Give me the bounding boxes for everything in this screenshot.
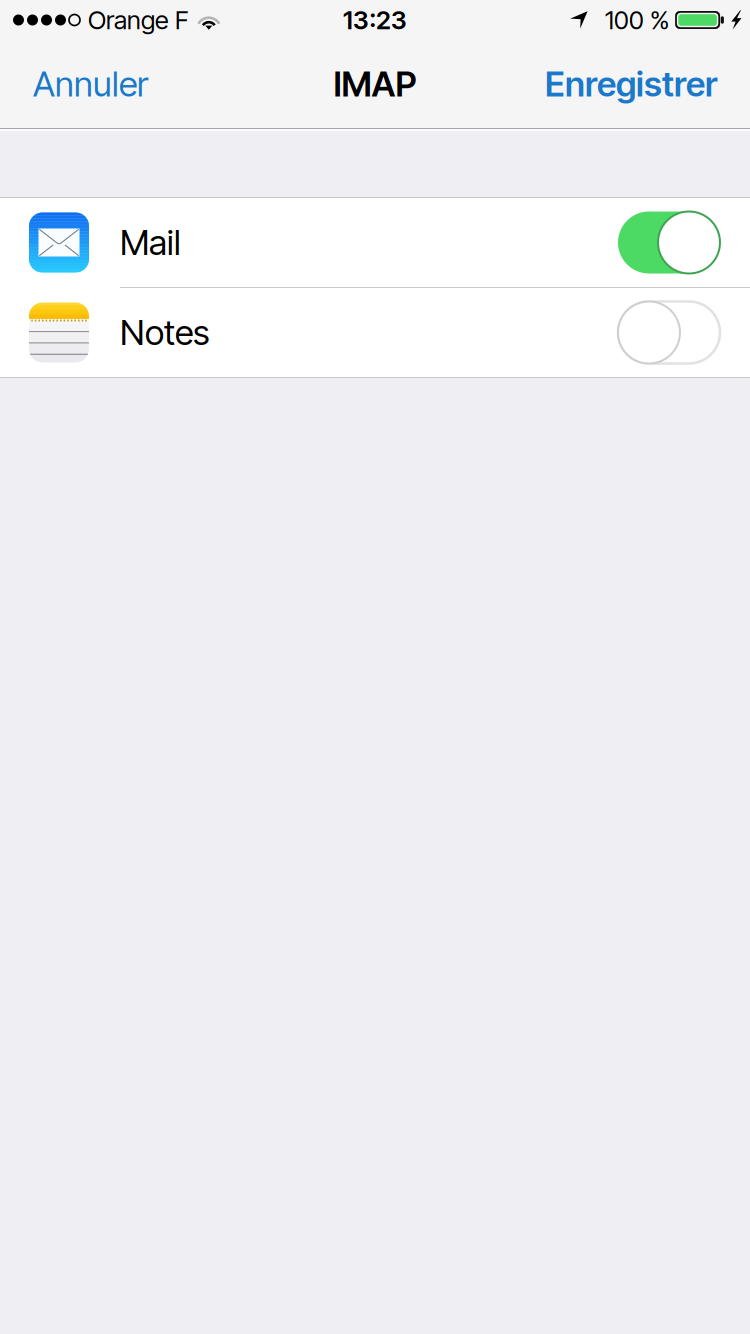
button[interactable]: Mail [0, 198, 750, 287]
staticText: Enregistrer [545, 63, 717, 105]
staticText: Orange F [88, 5, 189, 35]
staticText: 100 % [605, 5, 669, 35]
button[interactable]: Annuler [17, 40, 164, 128]
staticText: Notes [120, 311, 209, 353]
button[interactable]: Notes [0, 288, 750, 377]
staticText: Mail [120, 221, 181, 263]
button[interactable]: Enregistrer [529, 40, 733, 128]
staticText: Annuler [33, 63, 148, 105]
staticText: 13:23 [343, 5, 407, 35]
staticText: IMAP [333, 63, 416, 105]
